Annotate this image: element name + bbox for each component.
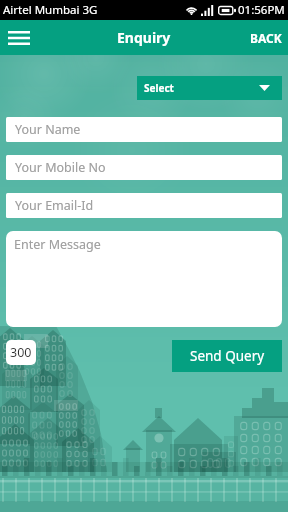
staticText: Select <box>144 81 174 95</box>
button[interactable]: Send Query <box>172 340 282 372</box>
button[interactable]: Select <box>137 76 282 100</box>
button[interactable]: Your Mobile No <box>6 155 282 180</box>
staticText: Your Mobile No <box>15 159 106 176</box>
button[interactable]: Your Name <box>6 117 282 142</box>
button[interactable]: BACK <box>244 23 288 53</box>
staticText: 01:56PM <box>238 2 285 18</box>
button[interactable]: Your Email-Id <box>6 193 282 218</box>
staticText: Send Query <box>190 347 265 365</box>
staticText: Airtel Mumbai 3G <box>3 2 98 18</box>
staticText: Your Name <box>15 121 81 138</box>
staticText: 300 <box>10 344 32 361</box>
staticText: Your Email-Id <box>15 197 94 214</box>
button[interactable]: Enter Message <box>6 231 282 327</box>
staticText: Enquiry <box>117 28 171 47</box>
staticText: Enter Message <box>14 236 101 253</box>
staticText: BACK <box>250 30 282 46</box>
button[interactable]: Open navigation menu <box>4 23 34 53</box>
